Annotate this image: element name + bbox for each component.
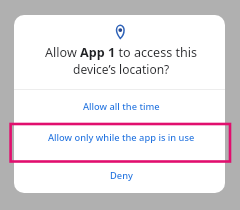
staticText: Allow only while the app is in use bbox=[48, 131, 195, 144]
staticText: device’s location? bbox=[73, 61, 170, 77]
staticText: Deny bbox=[110, 169, 133, 182]
staticText: Allow App 1 to access this bbox=[45, 44, 198, 61]
button[interactable]: Allow all the time bbox=[14, 89, 225, 125]
button[interactable]: Allow only while the app is in use bbox=[14, 124, 225, 162]
staticText: Allow all the time bbox=[83, 100, 160, 113]
button[interactable]: Deny bbox=[14, 162, 225, 193]
